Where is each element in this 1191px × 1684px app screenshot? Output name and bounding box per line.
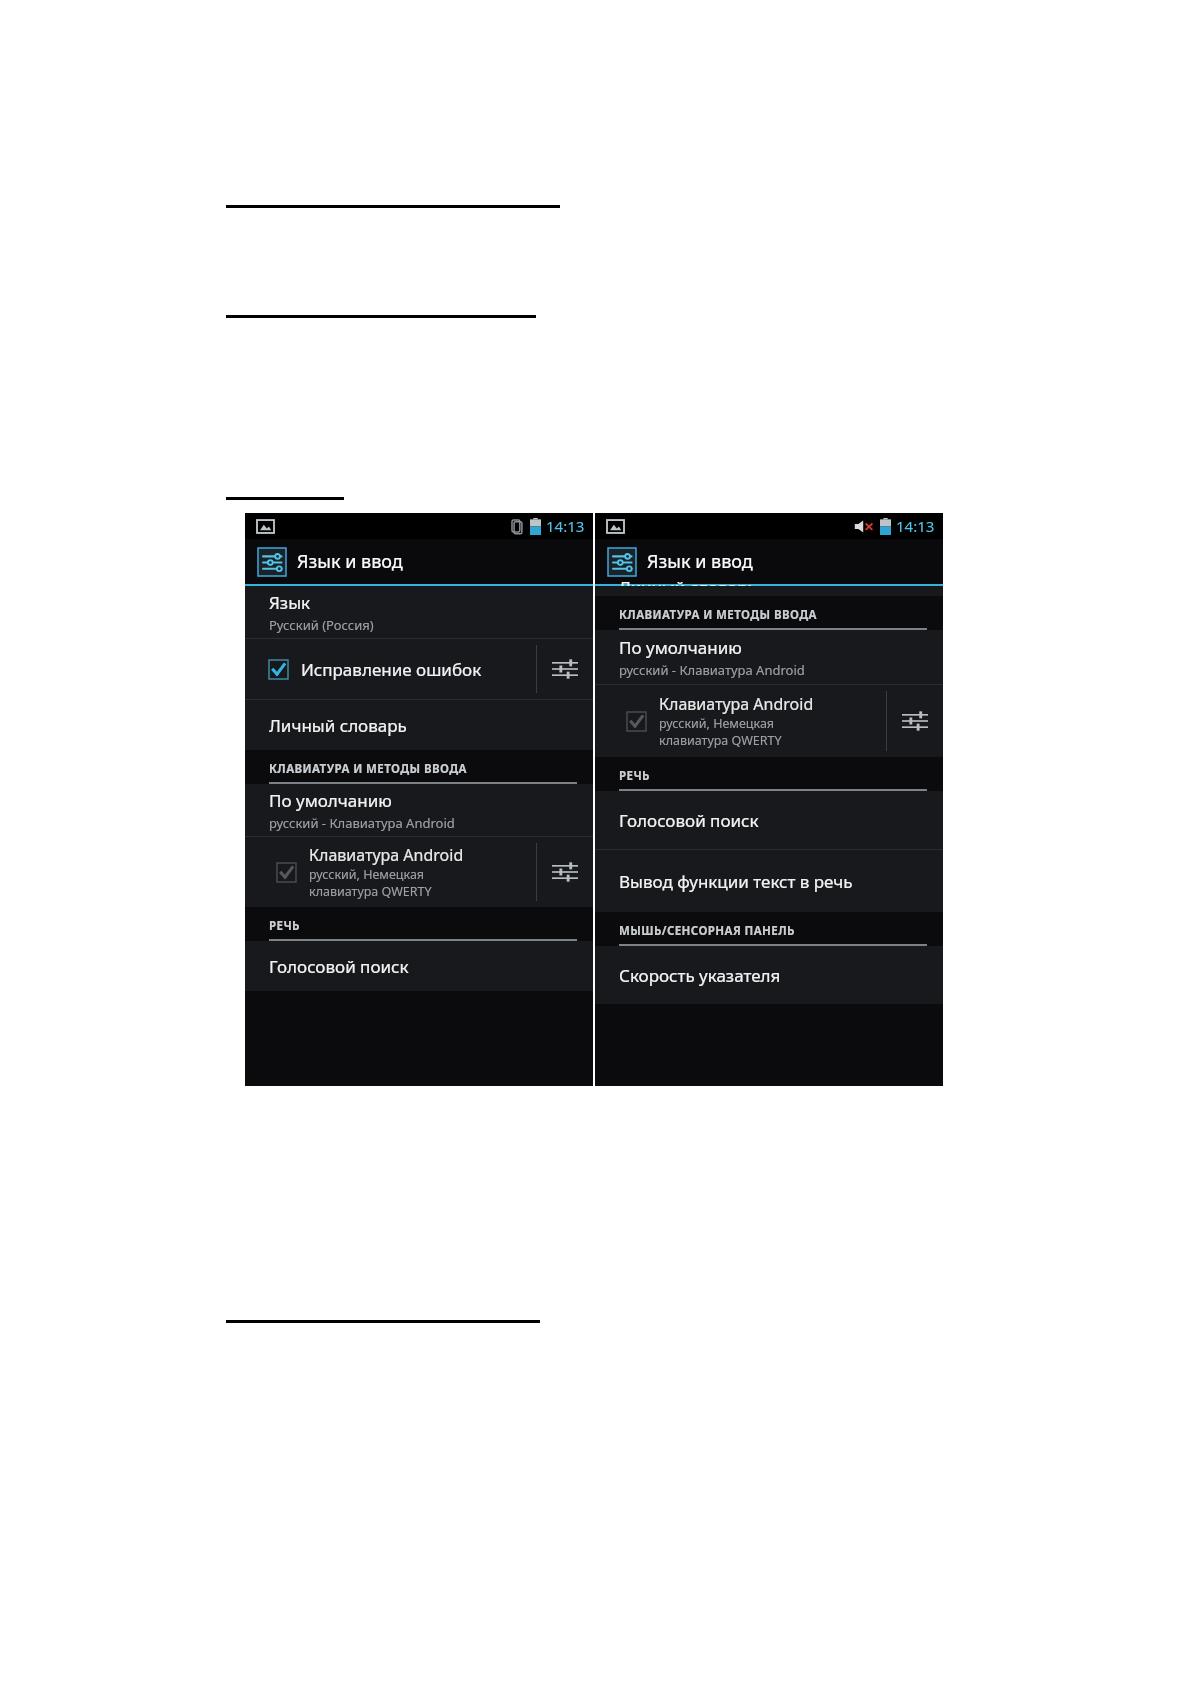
staticText: Личный словарь <box>619 576 757 586</box>
button[interactable]: Исправление ошибок <box>245 639 536 699</box>
staticText: клавиатура QWERTY <box>309 883 432 900</box>
button[interactable]: Язык и ввод <box>245 539 593 584</box>
button[interactable]: Настройки <box>537 837 593 907</box>
staticText: РЕЧЬ <box>269 918 300 934</box>
button[interactable]: Скорость указателя <box>595 946 943 1004</box>
staticText: Вывод функции текст в речь <box>619 870 853 893</box>
staticText: По умолчанию <box>619 636 742 659</box>
staticText: русский - Клавиатура Android <box>619 661 805 679</box>
staticText: МЫШЬ/СЕНСОРНАЯ ПАНЕЛЬ <box>619 923 795 939</box>
button[interactable]: По умолчанию <box>595 630 943 684</box>
staticText: русский, Немецкая <box>659 715 775 732</box>
button[interactable]: Клавиатура Android <box>595 685 886 757</box>
button[interactable]: Язык <box>245 586 593 638</box>
staticText: Исправление ошибок <box>301 658 482 681</box>
staticText: Личный словарь <box>269 714 407 737</box>
staticText: Язык <box>269 591 311 614</box>
staticText: Голосовой поиск <box>619 809 759 832</box>
button[interactable]: Настройки <box>537 639 593 699</box>
staticText: Клавиатура Android <box>659 693 814 715</box>
staticText: РЕЧЬ <box>619 768 650 784</box>
staticText: Язык и ввод <box>297 549 403 574</box>
staticText: 14:13 <box>896 516 935 536</box>
button[interactable]: Настройки <box>887 685 943 757</box>
staticText: Язык и ввод <box>647 549 753 574</box>
staticText: 14:13 <box>546 516 585 536</box>
staticText: По умолчанию <box>269 789 392 812</box>
button[interactable]: По умолчанию <box>245 784 593 836</box>
button[interactable]: Язык и ввод <box>595 539 943 584</box>
button[interactable]: Голосовой поиск <box>595 791 943 849</box>
button[interactable]: Голосовой поиск <box>245 941 593 991</box>
staticText: Скорость указателя <box>619 964 781 987</box>
button[interactable]: Личный словарь <box>245 700 593 750</box>
staticText: Клавиатура Android <box>309 844 464 866</box>
staticText: КЛАВИАТУРА И МЕТОДЫ ВВОДА <box>619 607 817 623</box>
staticText: клавиатура QWERTY <box>659 732 782 749</box>
staticText: КЛАВИАТУРА И МЕТОДЫ ВВОДА <box>269 761 467 777</box>
button[interactable]: Клавиатура Android <box>245 837 536 907</box>
staticText: русский, Немецкая <box>309 866 425 883</box>
staticText: Голосовой поиск <box>269 955 409 978</box>
staticText: Русский (Россия) <box>269 616 374 634</box>
button[interactable]: Вывод функции текст в речь <box>595 850 943 912</box>
staticText: русский - Клавиатура Android <box>269 814 455 832</box>
